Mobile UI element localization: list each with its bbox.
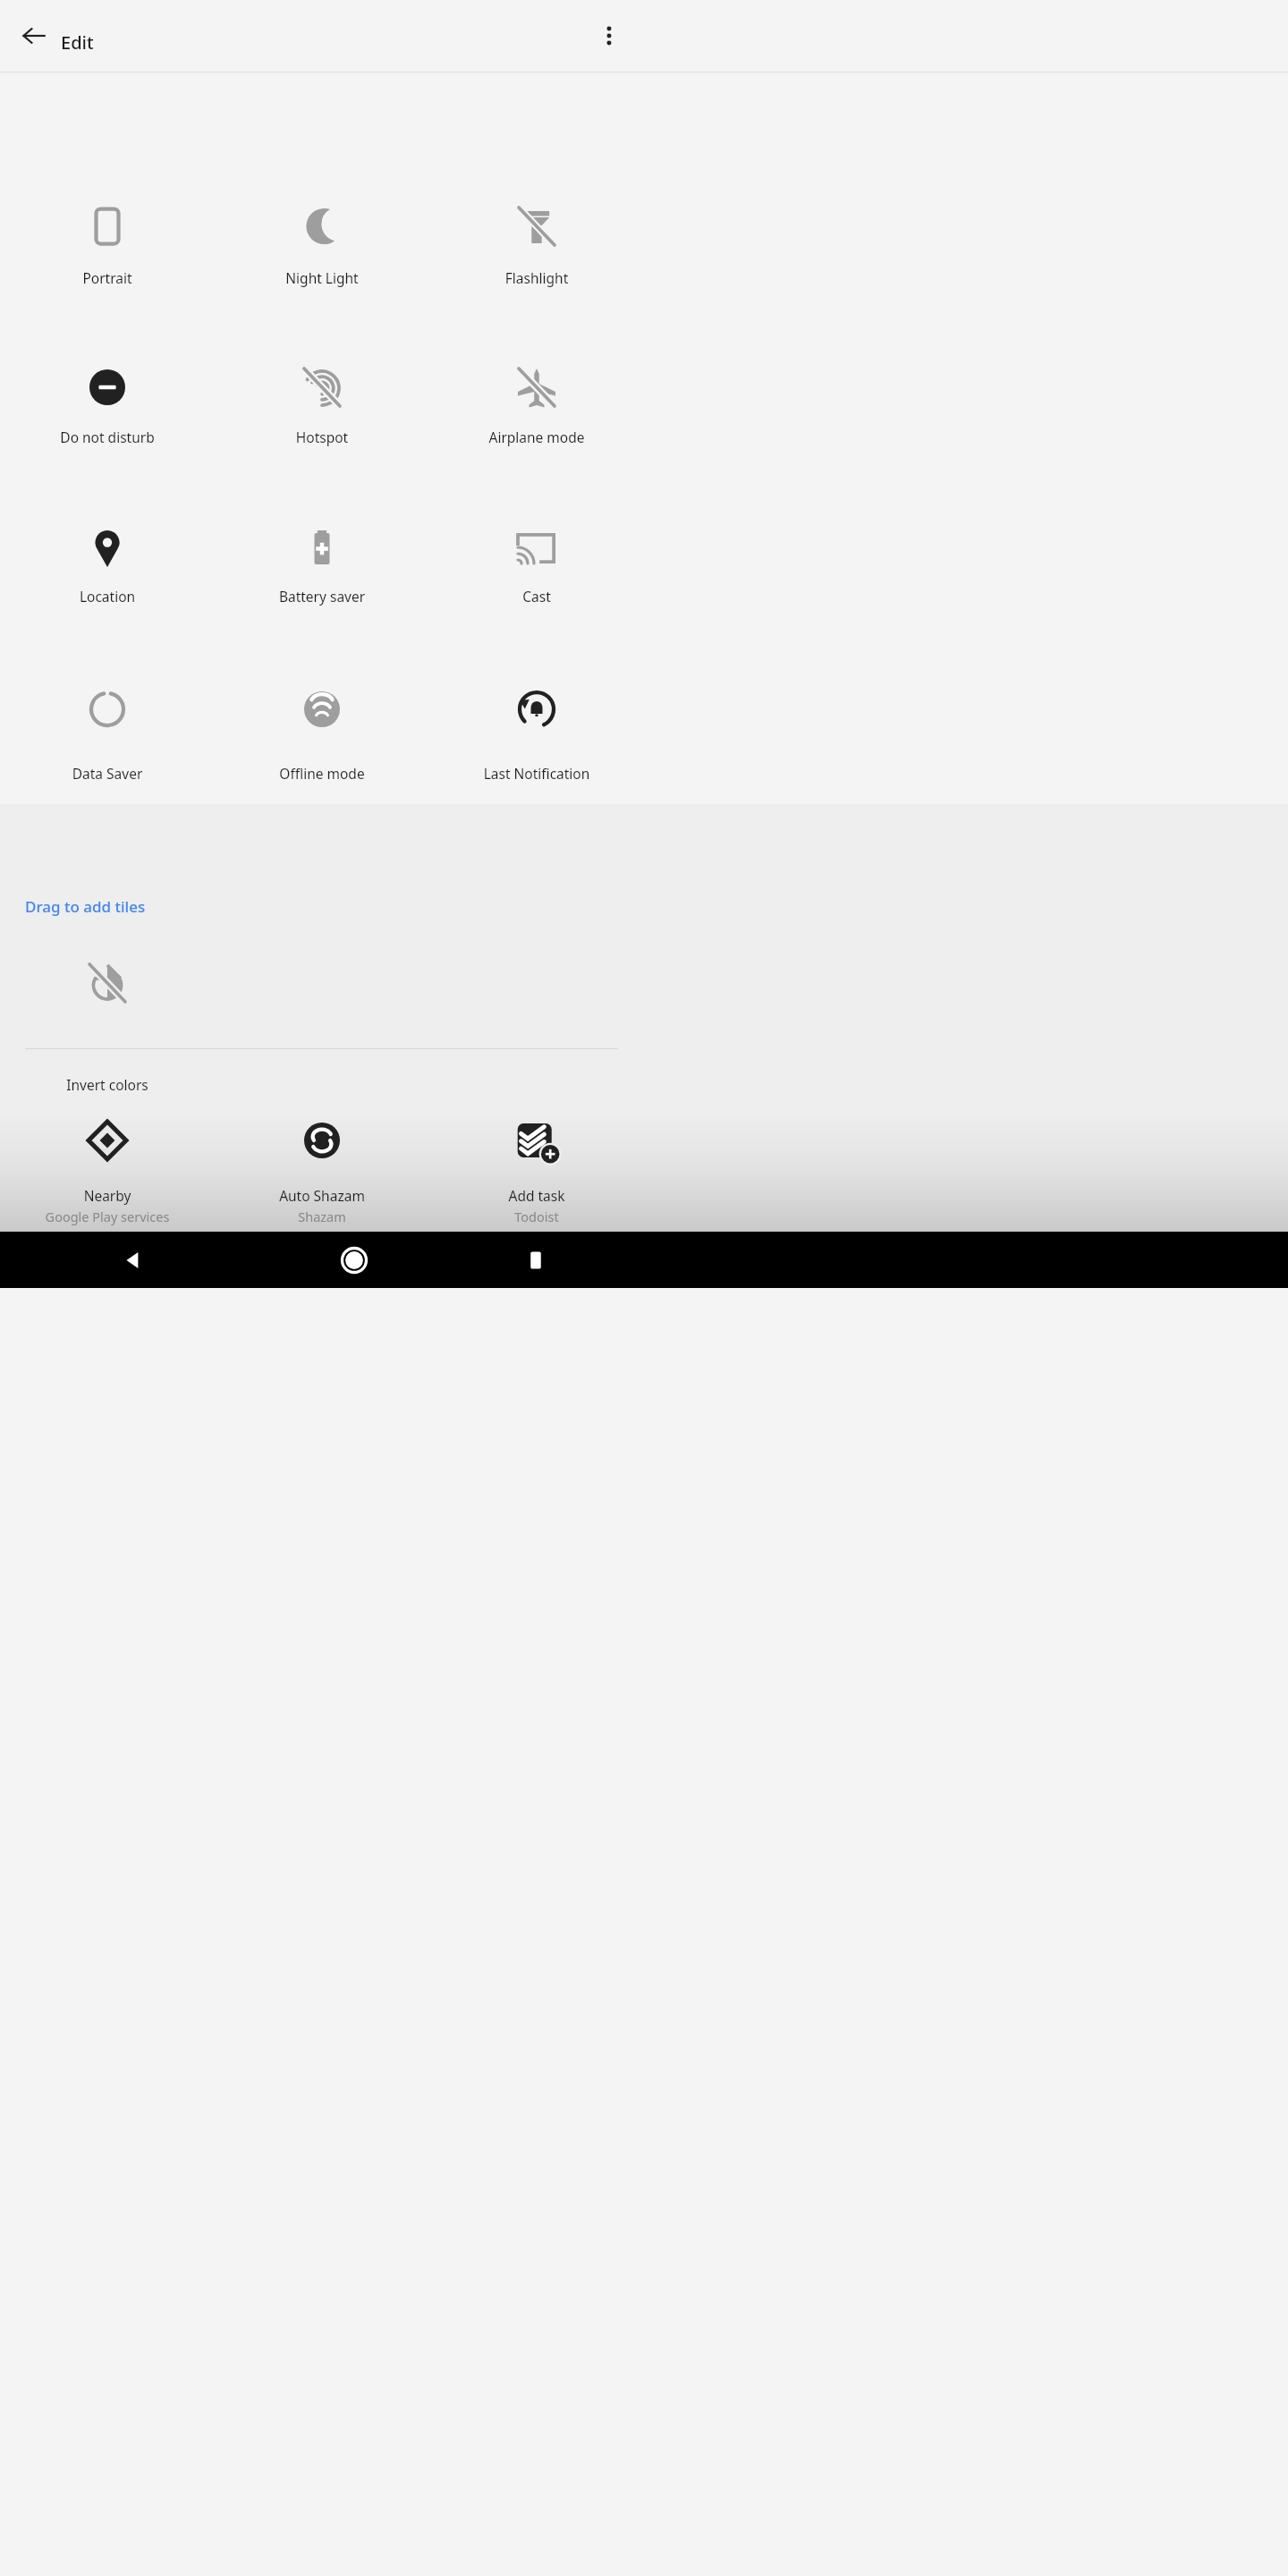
staticText: Google Play services — [0, 1207, 215, 1225]
staticText: Invert colors — [0, 1075, 215, 1094]
staticText: Cast — [429, 587, 644, 606]
button[interactable]: Back — [13, 14, 55, 57]
button[interactable]: Flashlight — [429, 177, 644, 304]
staticText: Auto Shazam — [215, 1186, 429, 1205]
staticText: Battery saver — [215, 587, 429, 606]
button[interactable]: Hotspot — [215, 338, 429, 463]
staticText: Do not disturb — [0, 428, 215, 446]
button[interactable]: Night Light — [215, 177, 429, 304]
staticText: Hotspot — [215, 428, 429, 446]
staticText: Night Light — [215, 268, 429, 287]
staticText: Shazam — [215, 1207, 429, 1225]
button[interactable]: Home — [316, 1232, 393, 1288]
button[interactable]: Location — [0, 499, 215, 623]
button[interactable]: Recents — [497, 1232, 574, 1288]
staticText: Todoist — [429, 1207, 644, 1225]
button[interactable]: Auto Shazam — [215, 1102, 429, 1232]
button[interactable]: Cast — [429, 499, 644, 623]
button[interactable]: Airplane mode — [429, 338, 644, 463]
button[interactable]: Portrait — [0, 177, 215, 304]
button[interactable]: More options — [588, 14, 631, 57]
staticText: Airplane mode — [429, 428, 644, 446]
button[interactable]: Do not disturb — [0, 338, 215, 463]
staticText: Add task — [429, 1186, 644, 1205]
staticText: Location — [0, 587, 215, 606]
staticText: Drag to add tiles — [25, 896, 146, 917]
button[interactable]: Data Saver — [0, 660, 215, 800]
button[interactable]: Battery saver — [215, 499, 429, 623]
staticText: Data Saver — [0, 764, 215, 783]
button[interactable]: Invert colors — [0, 934, 215, 1111]
staticText: Flashlight — [429, 268, 644, 287]
button[interactable]: Nearby — [0, 1102, 215, 1232]
staticText: Portrait — [0, 268, 215, 287]
button[interactable]: Last Notification — [429, 660, 644, 800]
staticText: Last Notification — [429, 764, 644, 783]
button[interactable]: Back — [123, 1232, 1288, 1288]
staticText: Edit — [61, 30, 94, 55]
staticText: Nearby — [0, 1186, 215, 1205]
button[interactable]: Offline mode — [215, 660, 429, 800]
button[interactable]: Add task — [429, 1102, 644, 1232]
staticText: Offline mode — [215, 764, 429, 783]
